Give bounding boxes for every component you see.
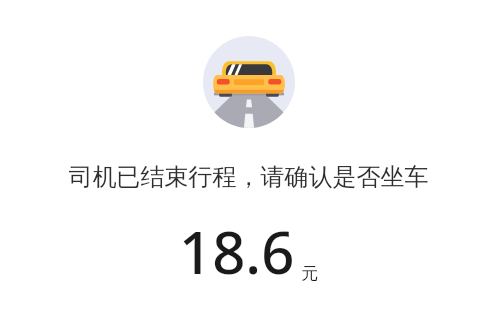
staticText: 司机已结束行程，请确认是否坐车 [0,162,497,192]
staticText: 18.6 [179,212,295,291]
other: Taxi trip finished illustration [203,36,295,128]
button[interactable]: 18.6 [0,212,497,291]
staticText: 元 [301,263,318,284]
button[interactable]: 司机已结束行程，请确认是否坐车 [0,162,497,192]
